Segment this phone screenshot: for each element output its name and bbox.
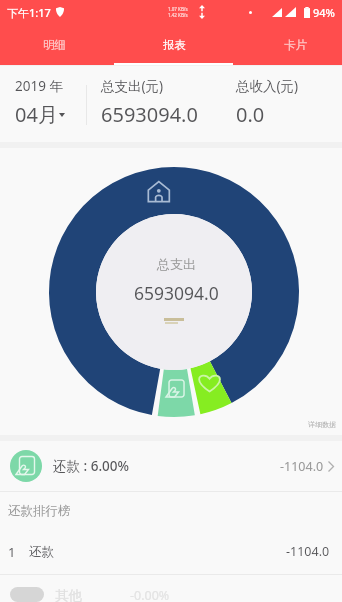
- staticText: 下午1:17: [7, 5, 51, 20]
- staticText: 2019 年: [15, 77, 63, 95]
- staticText: 6593094.0: [134, 281, 219, 305]
- staticText: 报表: [163, 38, 186, 52]
- staticText: 其他: [55, 587, 82, 602]
- staticText: 总支出: [157, 256, 196, 272]
- staticText: -1104.0: [280, 458, 324, 475]
- staticText: 1.42 KB/s: [168, 12, 188, 18]
- staticText: 04月: [15, 101, 58, 128]
- staticText: -1104.0: [286, 543, 330, 560]
- staticText: 总收入(元): [236, 77, 299, 95]
- staticText: 卡片: [284, 38, 307, 52]
- staticText: 1.07 KB/s: [168, 6, 188, 12]
- staticText: 94%: [313, 5, 335, 20]
- staticText: 还款排行榜: [8, 503, 71, 519]
- staticText: 还款: [29, 544, 54, 560]
- button[interactable]: 卡片: [235, 24, 342, 65]
- button[interactable]: 1: [0, 529, 342, 574]
- staticText: 详细数据: [308, 420, 336, 429]
- staticText: 明细: [43, 38, 66, 52]
- staticText: 总支出(元): [101, 77, 164, 95]
- staticText: 0.0: [236, 101, 265, 128]
- button[interactable]: 还款 : 6.00%: [0, 441, 342, 491]
- button[interactable]: 其他: [0, 575, 342, 602]
- staticText: 还款 : 6.00%: [53, 457, 130, 475]
- button[interactable]: 报表: [114, 24, 234, 65]
- staticText: -0.00%: [130, 587, 170, 602]
- button[interactable]: 明细: [0, 24, 114, 65]
- staticText: 6593094.0: [101, 101, 198, 128]
- staticText: 1: [8, 543, 16, 561]
